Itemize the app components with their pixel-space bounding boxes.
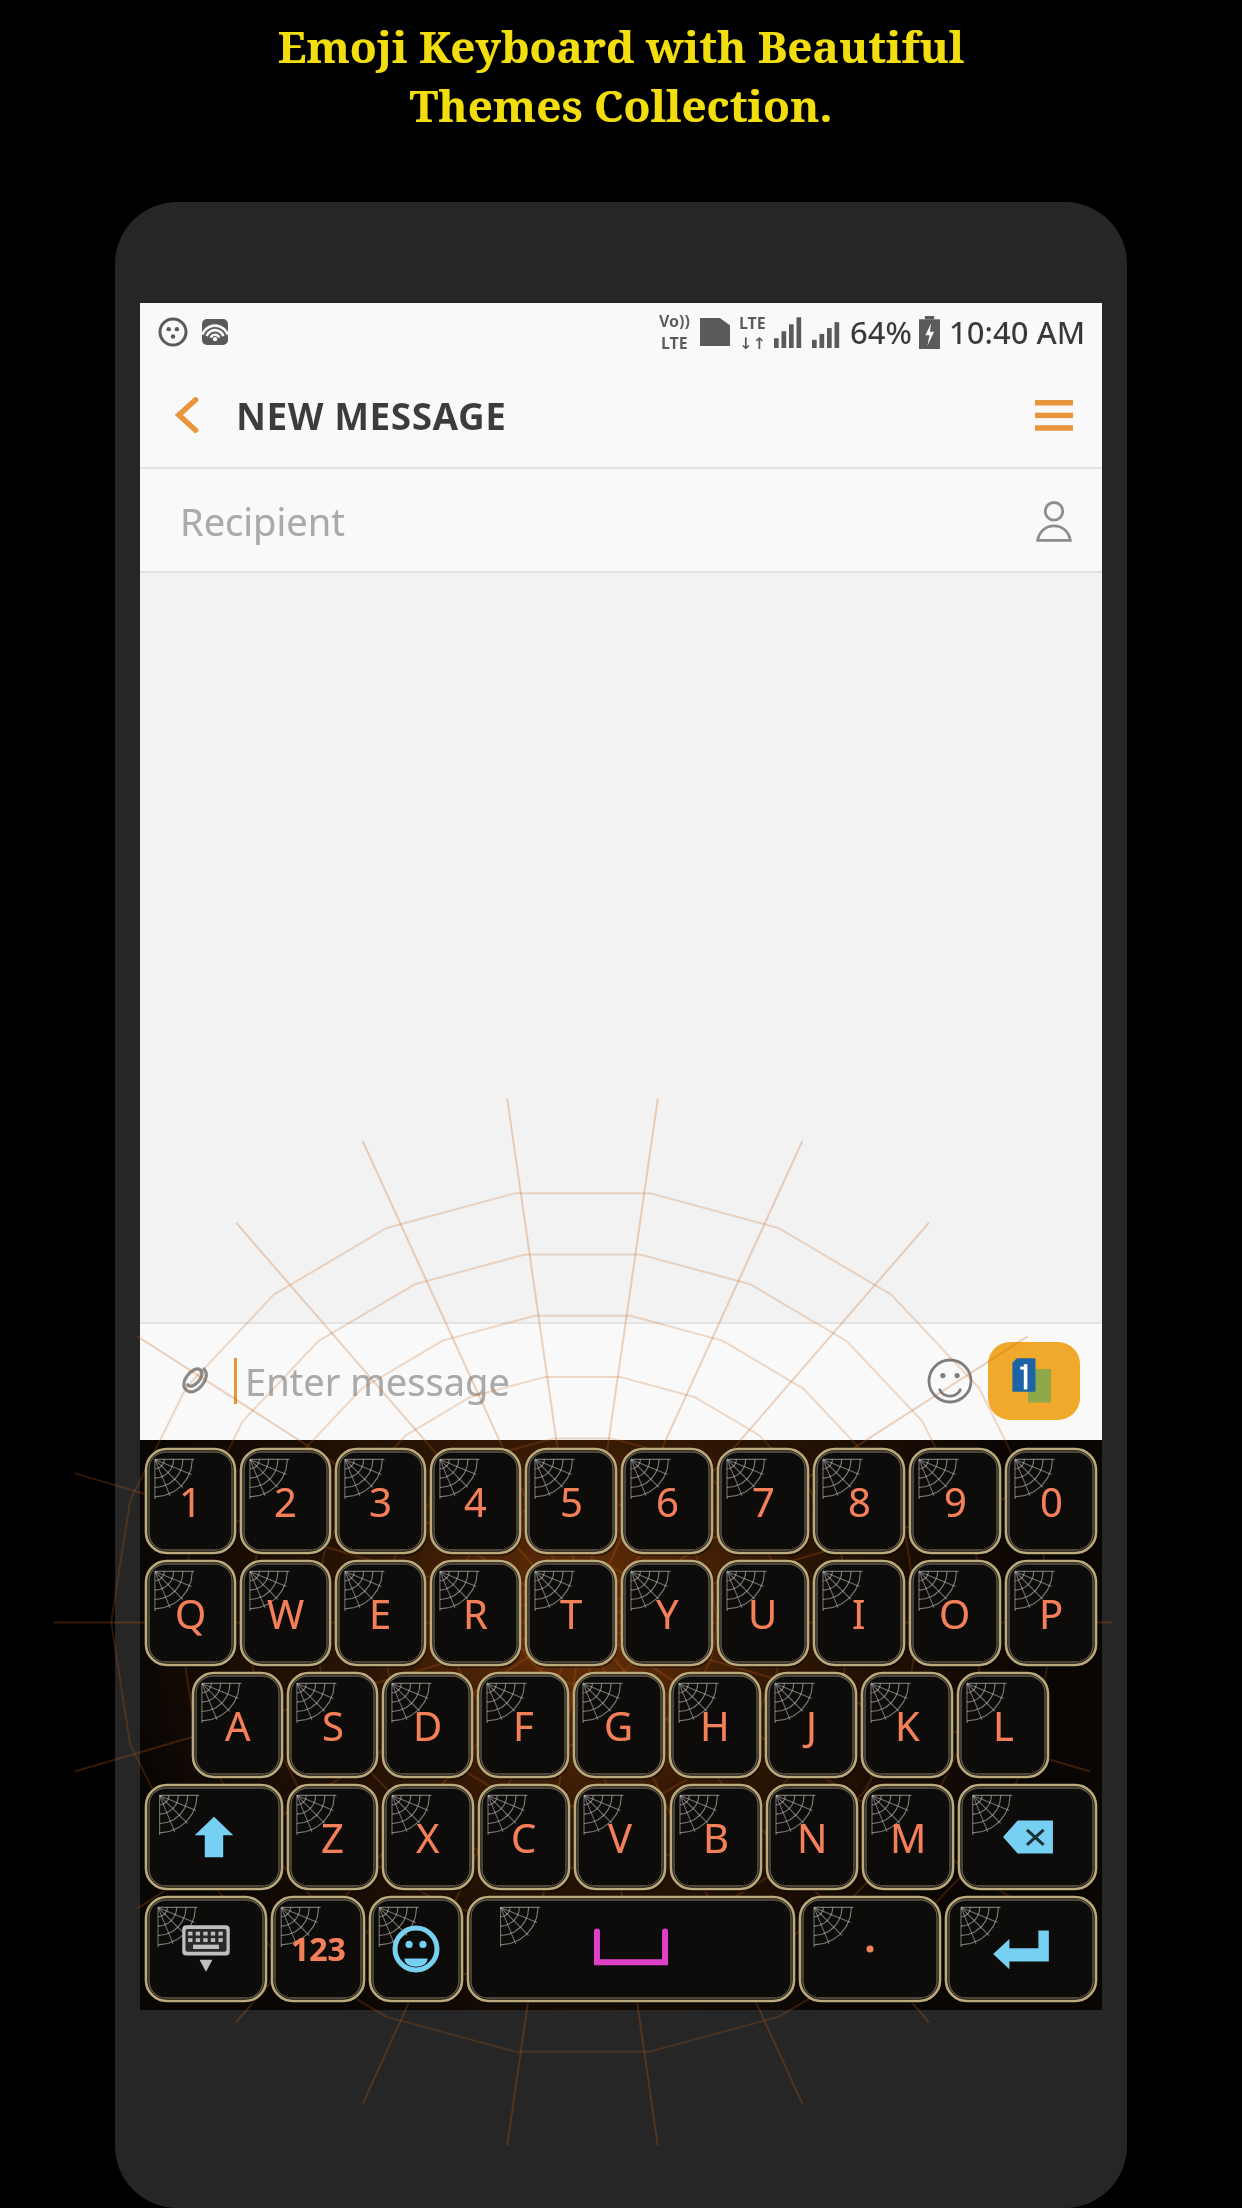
staticText: Emoji Keyboard with Beautiful Themes Col… [0,16,1242,134]
staticText: Vo)) [659,310,690,332]
button[interactable]: X [383,1785,473,1889]
staticText: D [413,1698,443,1752]
button[interactable]: 1 [146,1449,235,1553]
button[interactable]: Enter message [245,1355,918,1407]
staticText: T [560,1586,583,1640]
button[interactable]: Q [146,1561,235,1665]
staticText: 9 [944,1474,967,1528]
button[interactable]: Hide keyboard [146,1897,266,2001]
button[interactable]: L [958,1673,1048,1777]
staticText: I [852,1586,866,1640]
staticText: 5 [560,1474,583,1528]
button[interactable]: 8 [814,1449,904,1553]
button[interactable]: Y [622,1561,712,1665]
button[interactable]: P [1006,1561,1096,1665]
staticText: K [895,1698,920,1752]
staticText: 123 [291,1927,346,1971]
staticText: W [267,1586,305,1640]
staticText: U [748,1586,778,1640]
staticText: R [463,1586,488,1640]
staticText: A [225,1698,251,1752]
staticText: 3 [369,1474,392,1528]
staticText: F [513,1698,534,1752]
staticText: 4 [464,1474,487,1528]
button[interactable]: S [288,1673,377,1777]
button[interactable]: NEW MESSAGE [236,390,507,440]
staticText: Q [175,1586,207,1640]
staticText: 1 [179,1474,202,1528]
button[interactable]: Enter [946,1897,1096,2001]
staticText: G [604,1698,634,1752]
button[interactable]: V [575,1785,665,1889]
button[interactable]: Back [140,367,236,463]
button[interactable]: K [862,1673,952,1777]
staticText: Z [321,1810,344,1864]
staticText: LTE [661,332,688,354]
button[interactable]: Menu [1006,367,1102,463]
staticText: Recipient [180,495,345,547]
button[interactable]: Contacts [1006,473,1102,569]
staticText: J [806,1698,817,1752]
button[interactable]: N [767,1785,857,1889]
staticText: 64% [850,311,912,353]
staticText: M [890,1810,927,1864]
button[interactable]: H [670,1673,760,1777]
staticText: 8 [848,1474,871,1528]
staticText: X [416,1810,440,1864]
button[interactable]: 2 [241,1449,330,1553]
staticText: O [939,1586,971,1640]
staticText: 6 [656,1474,679,1528]
button[interactable]: 123 [272,1897,364,2001]
staticText: LTE [739,312,766,334]
button[interactable]: A [193,1673,282,1777]
button[interactable]: G [574,1673,664,1777]
button[interactable]: Shift [146,1785,282,1889]
button[interactable]: M [863,1785,953,1889]
staticText: 0 [1040,1474,1063,1528]
button[interactable]: C [479,1785,569,1889]
button[interactable]: W [241,1561,330,1665]
staticText: B [703,1810,729,1864]
staticText: L [993,1698,1014,1752]
button[interactable]: Send with SIM 1 [988,1342,1080,1420]
button[interactable]: U [718,1561,808,1665]
button[interactable]: 4 [431,1449,520,1553]
staticText: 7 [752,1474,775,1528]
button[interactable]: 5 [526,1449,616,1553]
button[interactable]: Backspace [959,1785,1096,1889]
button[interactable]: Z [288,1785,377,1889]
staticText: H [700,1698,730,1752]
button[interactable]: T [526,1561,616,1665]
staticText: C [511,1810,537,1864]
button[interactable]: F [478,1673,568,1777]
button[interactable]: R [431,1561,520,1665]
button[interactable]: Period [800,1897,940,2001]
button[interactable]: Emoji [370,1897,462,2001]
button[interactable]: 3 [336,1449,425,1553]
button[interactable]: J [766,1673,856,1777]
button[interactable]: O [910,1561,1000,1665]
staticText: 10:40 AM [949,311,1086,353]
button[interactable]: D [383,1673,472,1777]
button[interactable]: 7 [718,1449,808,1553]
staticText: P [1039,1586,1064,1640]
button[interactable]: 6 [622,1449,712,1553]
staticText: S [322,1698,344,1752]
staticText: 2 [274,1474,297,1528]
staticText: ↓↑ [739,334,766,353]
button[interactable]: I [814,1561,904,1665]
button[interactable]: Emoji [918,1349,982,1413]
button[interactable]: Attach [162,1350,224,1412]
staticText: N [797,1810,828,1864]
button[interactable]: 0 [1006,1449,1096,1553]
button[interactable]: B [671,1785,761,1889]
staticText: Y [656,1586,679,1640]
button[interactable]: 9 [910,1449,1000,1553]
staticText: E [369,1586,392,1640]
staticText: V [608,1810,632,1864]
button[interactable]: E [336,1561,425,1665]
button[interactable]: Space [468,1897,794,2001]
